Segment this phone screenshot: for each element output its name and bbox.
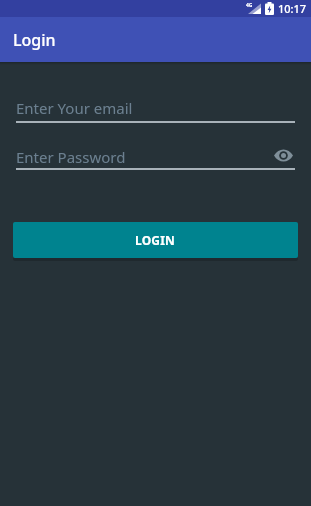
staticText: 10:17 (278, 1, 307, 16)
staticText: Enter Password (16, 147, 126, 167)
button[interactable]: Enter Your email (16, 98, 295, 123)
staticText: 4G (246, 2, 253, 9)
staticText: Login (13, 29, 56, 51)
staticText: Enter Your email (16, 98, 133, 118)
button[interactable]: LOGIN (13, 222, 298, 258)
button[interactable] (274, 149, 295, 165)
button[interactable]: Enter Password (16, 147, 295, 167)
staticText: LOGIN (135, 232, 176, 248)
